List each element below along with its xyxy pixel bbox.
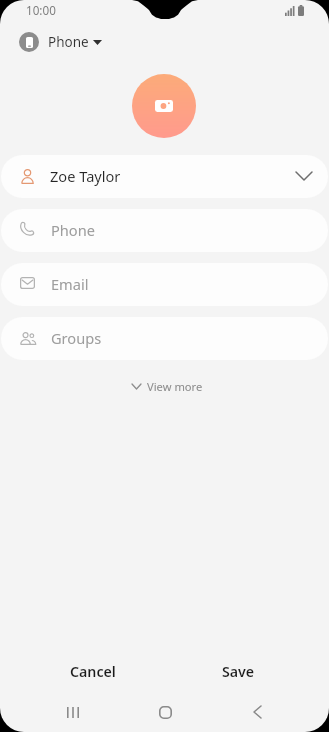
staticText: Zoe Taylor: [50, 166, 121, 186]
staticText: Groups: [51, 328, 102, 348]
button[interactable]: [1, 317, 328, 360]
staticText: View more: [147, 379, 203, 393]
staticText: Phone: [48, 33, 89, 51]
button[interactable]: [1, 209, 328, 252]
staticText: Phone: [51, 220, 95, 240]
button[interactable]: Back: [235, 696, 279, 728]
button[interactable]: [1, 263, 328, 306]
button[interactable]: View more: [132, 379, 203, 393]
button[interactable]: Phone: [19, 32, 102, 52]
button[interactable]: Home: [143, 696, 187, 728]
staticText: 10:00: [26, 2, 56, 18]
button[interactable]: [1, 155, 328, 198]
button[interactable]: Recents: [51, 696, 95, 728]
staticText: Save: [222, 662, 255, 681]
staticText: Email: [51, 274, 89, 294]
staticText: Cancel: [70, 662, 116, 681]
button[interactable]: Save: [167, 657, 310, 685]
button[interactable]: Add photo: [132, 74, 196, 138]
button[interactable]: Cancel: [21, 657, 165, 685]
